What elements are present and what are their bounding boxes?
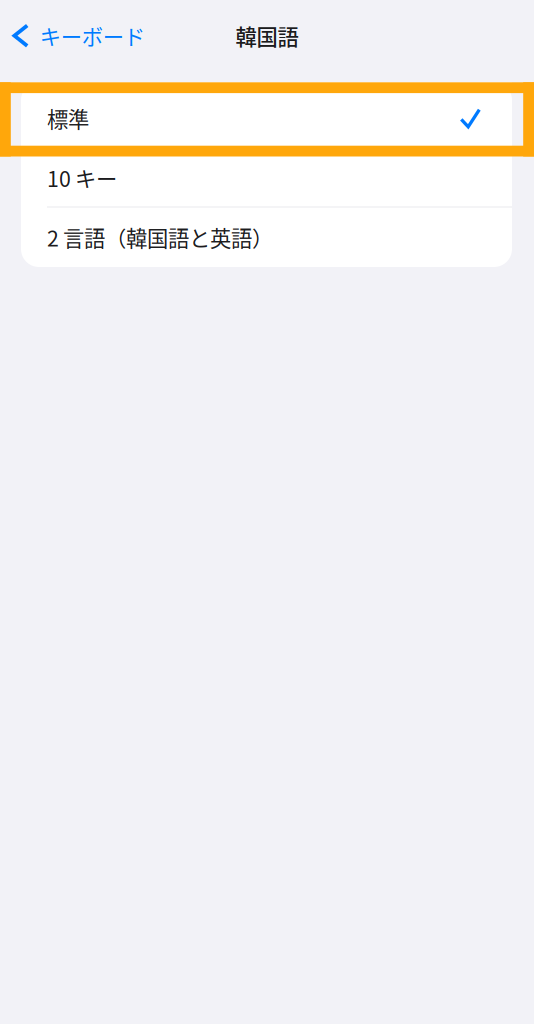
staticText: 韓国語 bbox=[235, 20, 298, 51]
staticText: 10 キー bbox=[47, 162, 117, 193]
button[interactable]: 標準 bbox=[21, 88, 512, 148]
button[interactable]: 10 キー bbox=[21, 148, 512, 207]
button[interactable]: キーボード bbox=[0, 12, 157, 60]
staticText: キーボード bbox=[40, 20, 145, 51]
staticText: 2 言語（韓国語と英語） bbox=[47, 222, 273, 253]
button[interactable]: 2 言語（韓国語と英語） bbox=[21, 207, 512, 267]
staticText: 標準 bbox=[47, 103, 89, 134]
